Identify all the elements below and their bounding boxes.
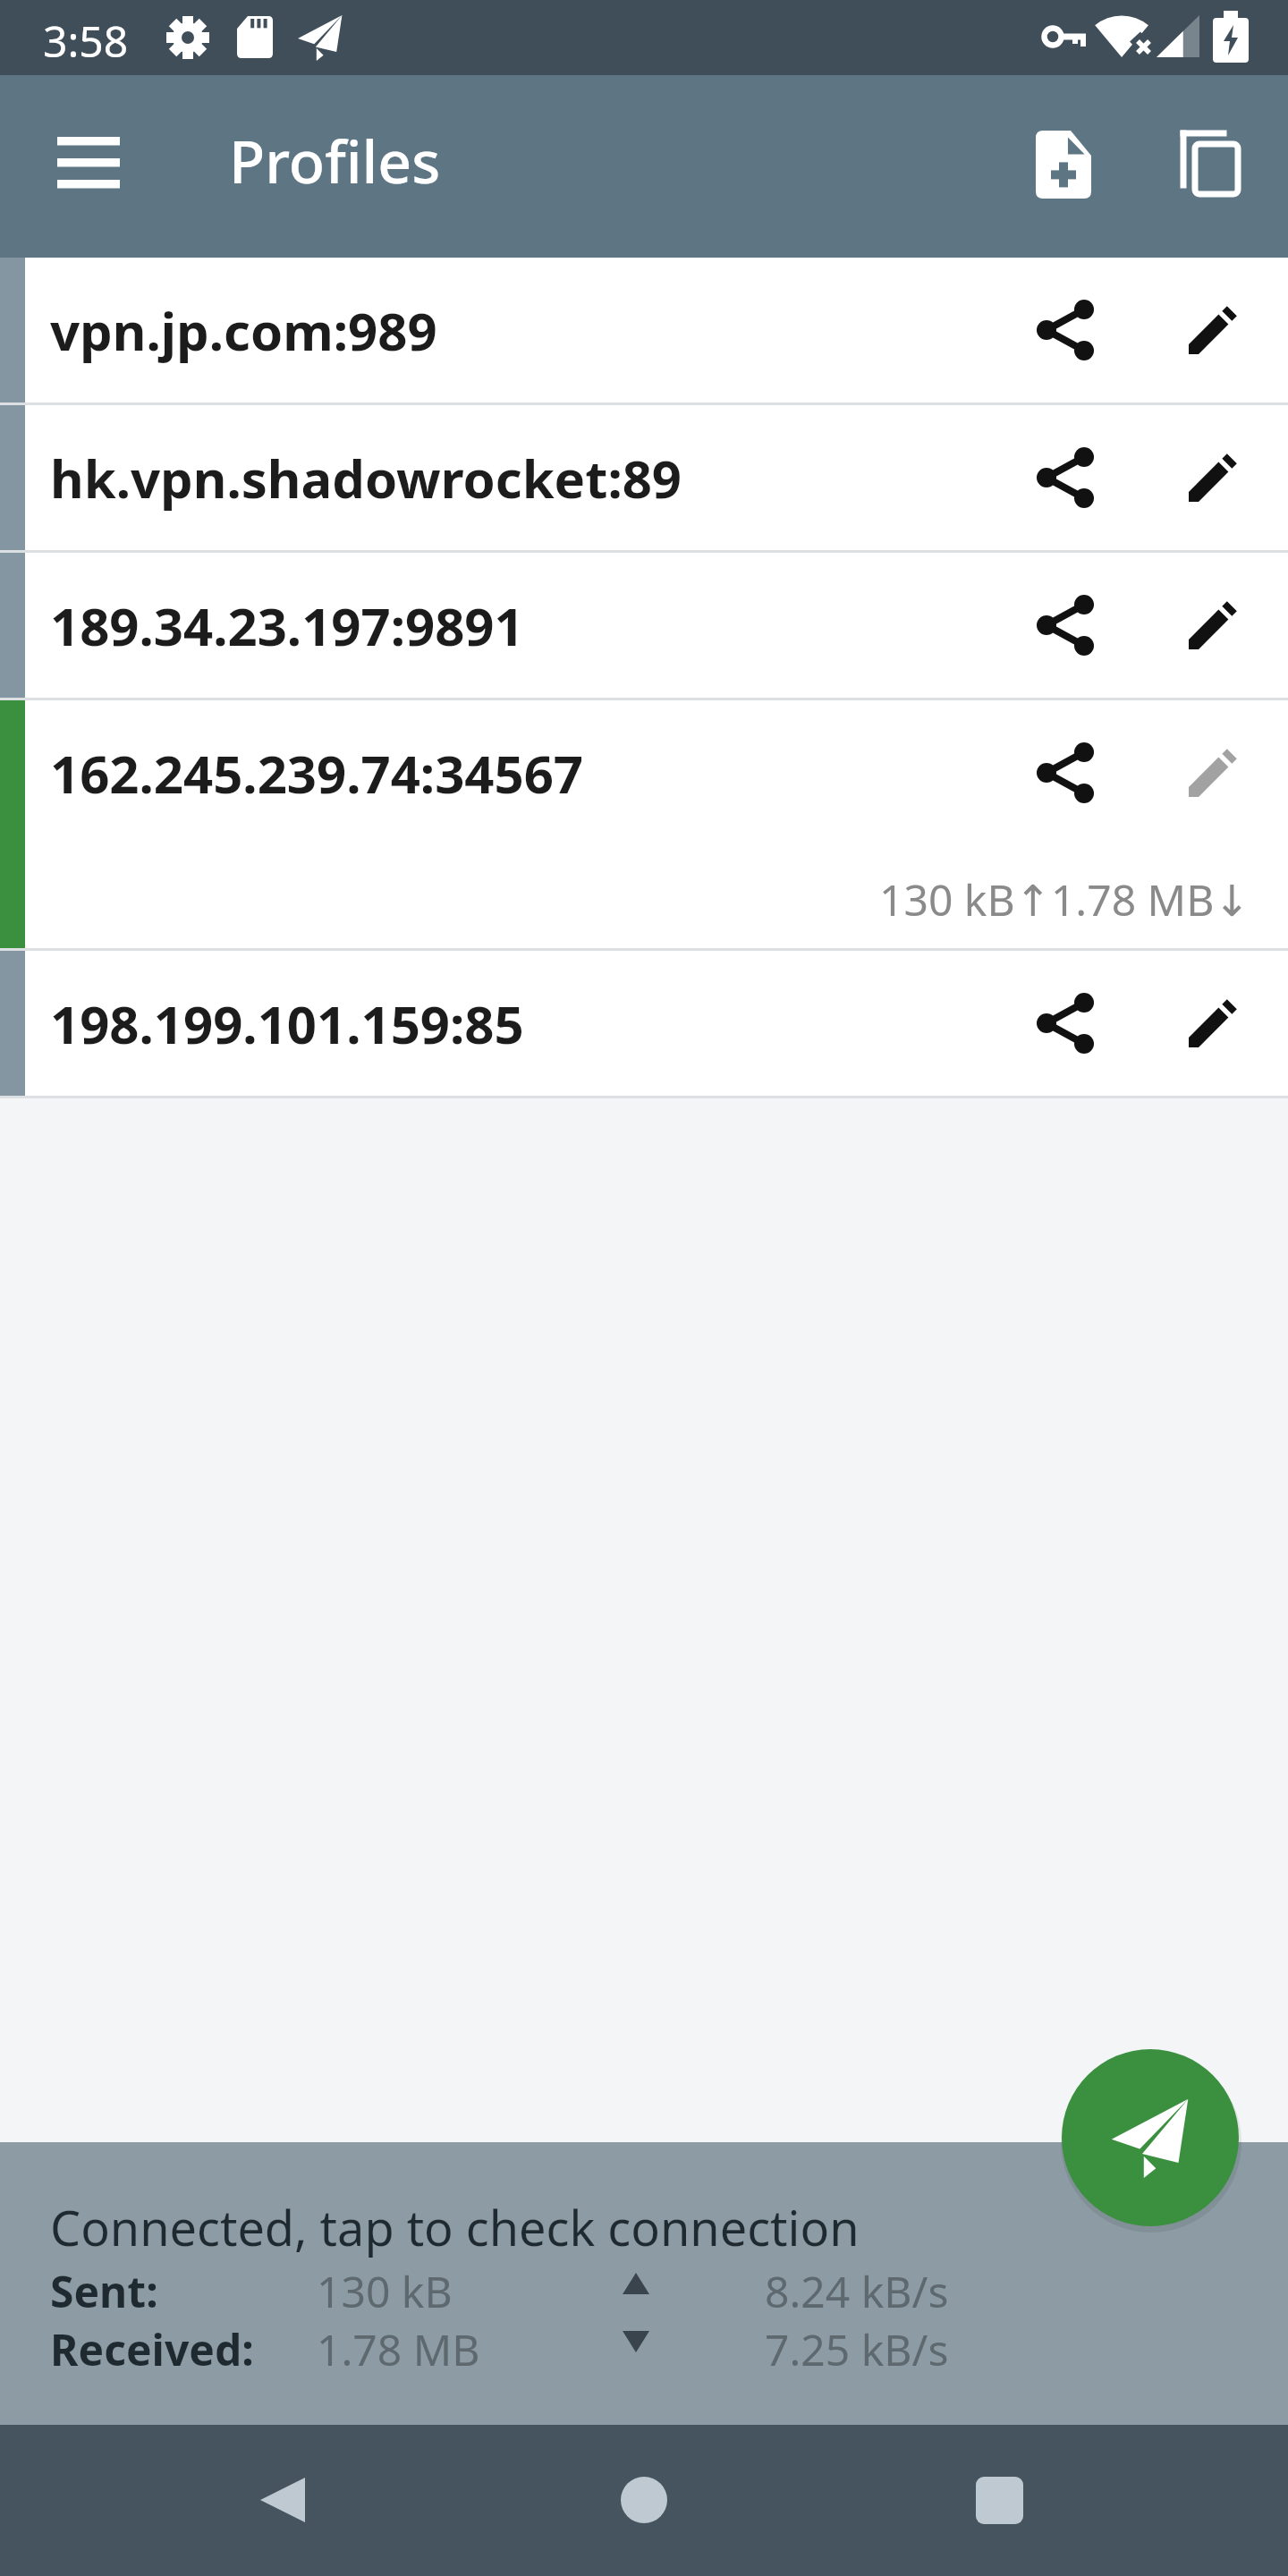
staticText: Received: (50, 2320, 254, 2378)
button[interactable] (1164, 724, 1262, 822)
button[interactable] (928, 2428, 1071, 2572)
button[interactable] (1018, 974, 1116, 1072)
button[interactable] (1018, 281, 1116, 379)
staticText: 198.199.101.159:85 (50, 988, 524, 1059)
button[interactable] (1062, 2049, 1239, 2226)
button[interactable] (1164, 428, 1262, 527)
staticText: 189.34.23.197:9891 (50, 590, 524, 661)
button[interactable]: 198.199.101.159:85 (0, 951, 1288, 1096)
button[interactable] (1164, 576, 1262, 674)
button[interactable] (1018, 428, 1116, 527)
staticText: Connected, tap to check connection (50, 2194, 860, 2260)
staticText: 130 kB (317, 2262, 453, 2320)
button[interactable] (1164, 281, 1262, 379)
button[interactable] (1021, 122, 1106, 208)
button[interactable] (1164, 974, 1262, 1072)
staticText: 1.78 MB (317, 2320, 480, 2378)
button[interactable] (1018, 724, 1116, 822)
staticText: Profiles (229, 120, 441, 200)
staticText: 3:58 (43, 12, 129, 70)
button[interactable] (1018, 576, 1116, 674)
button[interactable] (211, 2428, 354, 2572)
button[interactable]: vpn.jp.com:989 (0, 258, 1288, 402)
staticText: 130 kB↑1.78 MB↓ (879, 870, 1250, 928)
button[interactable] (1168, 117, 1254, 203)
staticText: 7.25 kB/s (765, 2320, 949, 2378)
staticText: hk.vpn.shadowrocket:89 (50, 443, 682, 513)
button[interactable] (39, 118, 138, 208)
staticText: 162.245.239.74:34567 (50, 738, 584, 809)
button[interactable]: 162.245.239.74:34567 (0, 700, 1288, 948)
button[interactable]: 189.34.23.197:9891 (0, 553, 1288, 698)
staticText: 8.24 kB/s (765, 2262, 949, 2320)
button[interactable]: hk.vpn.shadowrocket:89 (0, 405, 1288, 550)
staticText: vpn.jp.com:989 (50, 295, 437, 366)
staticText: Sent: (50, 2262, 158, 2320)
button[interactable] (572, 2428, 716, 2572)
button[interactable]: Connected, tap to check connection (0, 2142, 1288, 2425)
